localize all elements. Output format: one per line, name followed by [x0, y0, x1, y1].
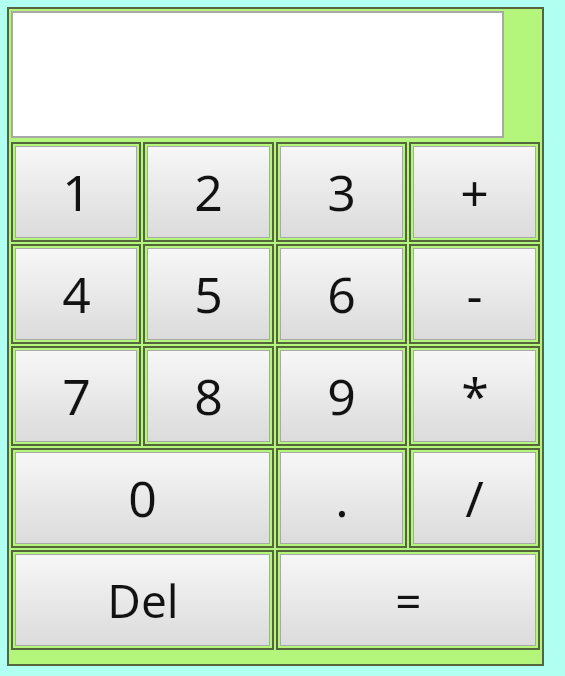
staticText: 2: [194, 158, 223, 226]
button[interactable]: 5: [147, 248, 270, 340]
staticText: 8: [194, 362, 223, 430]
button[interactable]: /: [413, 452, 536, 544]
button[interactable]: +: [413, 146, 536, 238]
staticText: +: [460, 158, 489, 226]
button[interactable]: 8: [147, 350, 270, 442]
button[interactable]: Del: [15, 554, 270, 646]
button[interactable]: 7: [15, 350, 137, 442]
staticText: 9: [327, 362, 356, 430]
button[interactable]: 6: [280, 248, 403, 340]
button[interactable]: 9: [280, 350, 403, 442]
staticText: 4: [62, 260, 91, 328]
button[interactable]: 1: [15, 146, 137, 238]
staticText: .: [335, 464, 349, 532]
staticText: -: [466, 260, 483, 328]
button[interactable]: -: [413, 248, 536, 340]
staticText: 1: [62, 158, 91, 226]
button[interactable]: *: [413, 350, 536, 442]
button[interactable]: =: [280, 554, 536, 646]
staticText: *: [461, 362, 489, 430]
button[interactable]: .: [280, 452, 403, 544]
staticText: =: [395, 569, 422, 632]
button[interactable]: 0: [15, 452, 270, 544]
staticText: /: [465, 464, 484, 532]
button[interactable]: Calculator display: [11, 11, 504, 138]
button[interactable]: 3: [280, 146, 403, 238]
staticText: 3: [327, 158, 356, 226]
staticText: 5: [194, 260, 223, 328]
button[interactable]: 4: [15, 248, 137, 340]
staticText: 6: [327, 260, 356, 328]
staticText: 7: [62, 362, 91, 430]
button[interactable]: 2: [147, 146, 270, 238]
staticText: Del: [107, 569, 179, 632]
staticText: 0: [128, 464, 157, 532]
